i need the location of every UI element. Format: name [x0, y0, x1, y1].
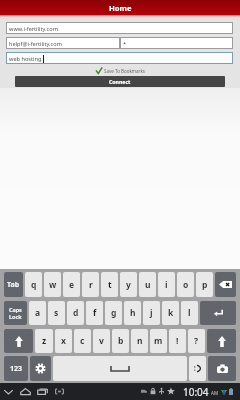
button[interactable]: g: [105, 301, 122, 325]
button[interactable]: k: [162, 301, 179, 325]
staticText: Caps: [9, 306, 22, 313]
button[interactable]: n: [131, 329, 148, 353]
staticText: k: [168, 307, 174, 319]
staticText: i: [165, 279, 168, 291]
staticText: e: [69, 279, 75, 291]
button[interactable]: Recents: [34, 383, 51, 400]
button[interactable]: Settings: [30, 356, 51, 381]
staticText: m: [154, 335, 163, 347]
staticText: www.i-fertility.com: [9, 25, 58, 33]
button[interactable]: Connect: [15, 76, 225, 87]
button[interactable]: u: [139, 272, 156, 297]
button[interactable]: Space: [53, 356, 187, 381]
button[interactable]: e: [63, 272, 80, 297]
button[interactable]: Shift: [207, 329, 236, 353]
staticText: a: [35, 307, 41, 319]
staticText: x: [61, 335, 66, 347]
button[interactable]: s: [48, 301, 65, 325]
button[interactable]: h: [124, 301, 141, 325]
staticText: q: [31, 279, 37, 291]
button[interactable]: o: [177, 272, 194, 297]
button[interactable]: Emoji: [189, 356, 206, 381]
button[interactable]: d: [67, 301, 84, 325]
button[interactable]: ?: [188, 329, 205, 353]
button[interactable]: p: [196, 272, 213, 297]
button[interactable]: Shift: [4, 329, 33, 353]
button[interactable]: v: [93, 329, 110, 353]
button[interactable]: z: [35, 329, 53, 353]
button[interactable]: i: [158, 272, 175, 297]
button[interactable]: j: [143, 301, 160, 325]
button[interactable]: Backspace: [215, 272, 236, 297]
staticText: p: [202, 279, 208, 291]
staticText: g: [111, 307, 117, 319]
button[interactable]: c: [74, 329, 91, 353]
staticText: ?: [194, 335, 199, 347]
button[interactable]: Caps: [4, 301, 27, 325]
staticText: web hosting: [9, 55, 42, 63]
button[interactable]: Enter: [200, 301, 236, 325]
staticText: o: [183, 279, 189, 291]
staticText: l: [188, 307, 191, 319]
staticText: Lock: [9, 313, 22, 320]
staticText: c: [80, 335, 85, 347]
staticText: Connect: [109, 78, 131, 85]
button[interactable]: Save To Bookmarks: [96, 66, 145, 75]
button[interactable]: x: [55, 329, 72, 353]
button[interactable]: helpf@i-fertility.com: [6, 37, 120, 49]
staticText: h: [130, 307, 136, 319]
button[interactable]: y: [120, 272, 137, 297]
staticText: d: [73, 307, 79, 319]
button[interactable]: *: [120, 37, 233, 49]
staticText: *: [123, 40, 127, 48]
staticText: u: [145, 279, 151, 291]
button[interactable]: q: [25, 272, 42, 297]
button[interactable]: w: [44, 272, 61, 297]
staticText: n: [137, 335, 143, 347]
button[interactable]: www.i-fertility.com: [6, 22, 233, 34]
staticText: y: [126, 279, 131, 291]
button[interactable]: f: [86, 301, 103, 325]
staticText: !: [176, 335, 179, 347]
staticText: f: [93, 307, 97, 319]
staticText: Save To Bookmarks: [104, 68, 145, 74]
staticText: t: [108, 279, 112, 291]
button[interactable]: Back: [0, 383, 17, 400]
button[interactable]: l: [181, 301, 198, 325]
staticText: 10:04: [183, 385, 209, 399]
staticText: AM: [211, 390, 219, 396]
button[interactable]: a: [29, 301, 46, 325]
button[interactable]: Home: [17, 383, 34, 400]
staticText: r: [89, 279, 93, 291]
staticText: w: [49, 279, 57, 291]
button[interactable]: Screenshot: [51, 383, 68, 400]
staticText: helpf@i-fertility.com: [9, 40, 62, 48]
staticText: z: [42, 335, 47, 347]
button[interactable]: m: [150, 329, 167, 353]
staticText: Tab: [7, 280, 20, 290]
button[interactable]: b: [112, 329, 129, 353]
button[interactable]: Tab: [4, 272, 23, 297]
button[interactable]: 123: [4, 356, 28, 381]
button[interactable]: Camera: [208, 356, 236, 381]
staticText: v: [99, 335, 104, 347]
staticText: b: [118, 335, 124, 347]
staticText: s: [54, 307, 59, 319]
staticText: Home: [109, 3, 132, 13]
button[interactable]: r: [82, 272, 99, 297]
staticText: 123: [10, 364, 23, 374]
staticText: j: [150, 307, 153, 319]
button[interactable]: !: [169, 329, 186, 353]
button[interactable]: web hosting: [6, 52, 233, 64]
button[interactable]: t: [101, 272, 118, 297]
